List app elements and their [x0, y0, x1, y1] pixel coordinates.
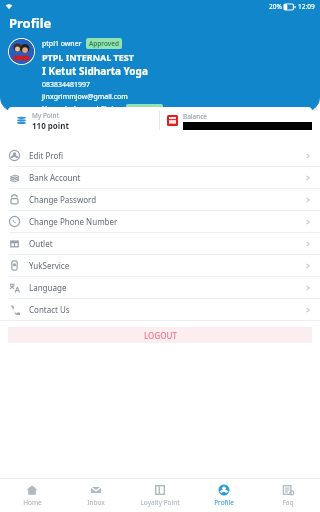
button[interactable]: My Point	[8, 107, 159, 134]
staticText: Home	[23, 498, 42, 507]
staticText: Outlet	[29, 238, 53, 249]
button[interactable]: Contact Us	[0, 299, 320, 320]
staticText: Upgrade Account Status	[42, 104, 122, 112]
staticText: I Ketut Sidharta Yoga	[42, 64, 148, 78]
staticText: Change Phone Number	[29, 216, 118, 227]
button[interactable]: Change Phone Number	[0, 211, 320, 232]
staticText: Contact Us	[29, 304, 70, 315]
staticText: My Point	[32, 111, 59, 120]
staticText: Edit Profi	[29, 150, 64, 161]
staticText: Approved	[89, 39, 119, 48]
button[interactable]: Balance	[160, 107, 312, 134]
button[interactable]: Outlet	[0, 233, 320, 254]
staticText: LOGOUT	[144, 330, 177, 341]
staticText: Change Password	[29, 194, 97, 205]
button[interactable]: Home	[0, 479, 64, 512]
button[interactable]: Language	[0, 277, 320, 298]
staticText: Language	[29, 282, 67, 293]
staticText: Bank Account	[29, 172, 81, 183]
button[interactable]: Edit Profi	[0, 145, 320, 166]
staticText: Loyalty Point	[140, 498, 180, 507]
button[interactable]: Inbox	[64, 479, 128, 512]
staticText: 110 point	[32, 120, 69, 131]
staticText: jinxgrimmjow@gmail.com	[42, 92, 128, 102]
button[interactable]: Change Password	[0, 189, 320, 210]
staticText: Profile	[9, 14, 52, 32]
staticText: Upgraded	[129, 105, 160, 111]
staticText: 083834481997	[42, 80, 91, 90]
staticText: YukService	[29, 260, 70, 271]
staticText: 12:09	[298, 2, 315, 11]
staticText: 20%	[269, 2, 282, 11]
staticText: ptpl1 owner	[42, 39, 82, 49]
button[interactable]: Faq	[256, 479, 320, 512]
staticText: Balance	[183, 112, 207, 121]
staticText: Inbox	[87, 498, 105, 507]
button[interactable]: Bank Account	[0, 167, 320, 188]
button[interactable]: YukService	[0, 255, 320, 276]
button[interactable]: LOGOUT	[8, 327, 312, 343]
button[interactable]: Profile	[192, 479, 256, 512]
button[interactable]: Loyalty Point	[128, 479, 192, 512]
staticText: Profile	[214, 498, 234, 507]
staticText: Faq	[282, 498, 294, 507]
staticText: PTPL INTERNAL TEST	[42, 51, 134, 63]
